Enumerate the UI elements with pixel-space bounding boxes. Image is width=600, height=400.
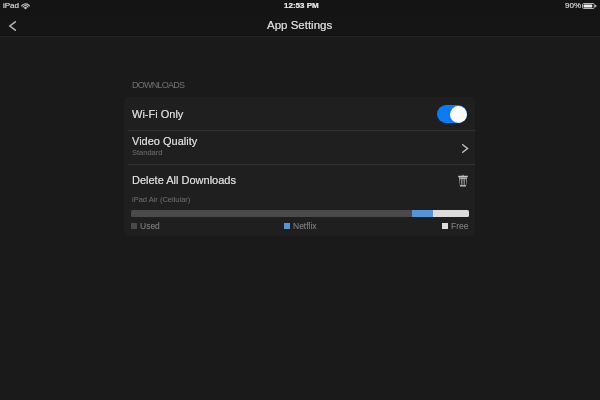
button[interactable]: Video Quality xyxy=(124,131,475,164)
staticText: Delete All Downloads xyxy=(132,174,236,186)
staticText: iPad xyxy=(3,1,20,10)
staticText: Netflix xyxy=(293,221,317,230)
staticText: Standard xyxy=(132,148,163,156)
staticText: Free xyxy=(451,221,469,230)
staticText: Wi-Fi Only xyxy=(132,108,184,120)
staticText: Used xyxy=(140,221,160,230)
staticText: Video Quality xyxy=(132,135,198,147)
button[interactable]: Back xyxy=(0,17,25,36)
staticText: 12:53 PM xyxy=(284,1,319,10)
staticText: iPad Air (Cellular) xyxy=(132,195,191,203)
staticText: 90% xyxy=(565,1,582,10)
staticText: App Settings xyxy=(267,19,333,32)
button[interactable]: Wi-Fi Only xyxy=(124,97,475,130)
button[interactable]: Wi-Fi Only toggle xyxy=(437,105,467,123)
button[interactable]: Delete All Downloads xyxy=(124,167,475,193)
staticText: DOWNLOADS xyxy=(132,80,185,90)
button[interactable]: Delete all downloads xyxy=(455,172,471,188)
